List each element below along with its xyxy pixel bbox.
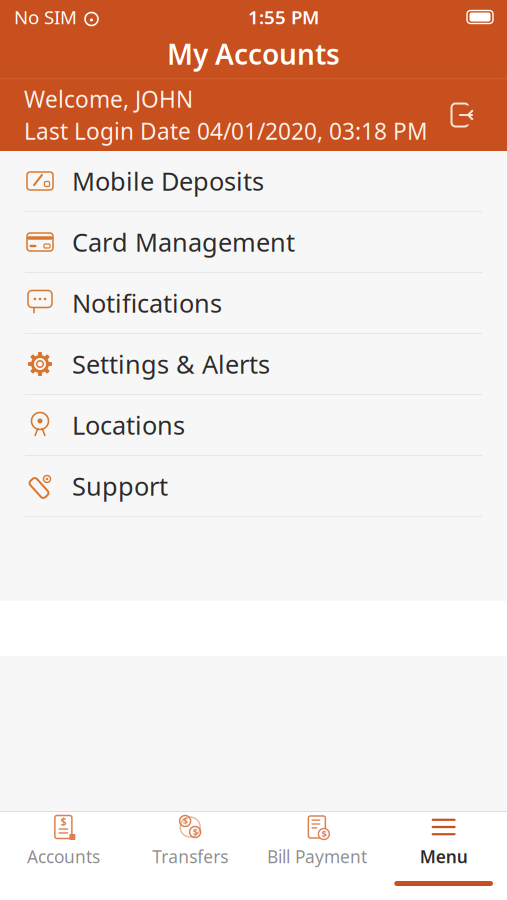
staticText: Last Login Date 04/01/2020, 03:18 PM — [24, 116, 428, 146]
staticText: Welcome, JOHN — [24, 84, 193, 114]
staticText: Accounts — [27, 845, 100, 868]
button[interactable]: $ — [0, 812, 127, 886]
staticText: Transfers — [152, 845, 228, 868]
staticText: My Accounts — [167, 35, 340, 73]
staticText: Notifications — [72, 286, 222, 320]
staticText: Support — [72, 469, 168, 503]
staticText: $ — [60, 814, 66, 828]
button[interactable]: $ — [253, 812, 380, 886]
staticText: Menu — [420, 845, 468, 868]
staticText: $ — [321, 828, 326, 840]
button[interactable]: Notifications — [0, 273, 507, 334]
staticText: Mobile Deposits — [72, 164, 264, 198]
staticText: Locations — [72, 408, 185, 442]
button[interactable]: Card Management — [0, 212, 507, 273]
button[interactable]: $ — [127, 812, 254, 886]
staticText: $ — [183, 815, 188, 827]
button[interactable]: Support — [0, 456, 507, 517]
staticText: Bill Payment — [267, 845, 367, 868]
staticText: No SIM — [14, 5, 77, 29]
staticText: Settings & Alerts — [72, 347, 270, 381]
staticText: $ — [193, 826, 198, 838]
staticText: 1:55 PM — [248, 5, 319, 29]
button[interactable]: Menu — [380, 812, 507, 886]
button[interactable]: Locations — [0, 395, 507, 456]
button[interactable]: Log out — [437, 92, 483, 138]
staticText: Card Management — [72, 225, 295, 259]
button[interactable]: Mobile Deposits — [0, 151, 507, 212]
button[interactable]: Settings & Alerts — [0, 334, 507, 395]
